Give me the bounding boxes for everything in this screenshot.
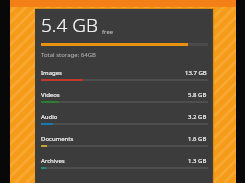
- staticText: Audio: [41, 113, 58, 121]
- staticText: 1.6 GB: [188, 135, 207, 143]
- button[interactable]: Videos 5.8 GB: [41, 91, 208, 103]
- button[interactable]: Archives 1.3 GB: [41, 157, 208, 169]
- staticText: free: [102, 28, 114, 36]
- staticText: 13.7 GB: [185, 69, 207, 77]
- staticText: Images: [41, 69, 62, 77]
- button[interactable]: Audio 3.2 GB: [41, 113, 208, 125]
- staticText: 5.4 GB: [41, 12, 99, 38]
- staticText: Total storage: 64GB: [41, 51, 96, 59]
- staticText: 1.3 GB: [188, 157, 207, 165]
- staticText: Videos: [41, 91, 60, 99]
- button[interactable]: 5.4 GB: [35, 8, 214, 183]
- staticText: 3.2 GB: [188, 113, 207, 121]
- staticText: Archives: [41, 157, 65, 165]
- staticText: 5.8 GB: [188, 91, 207, 99]
- button[interactable]: Images 13.7 GB: [41, 69, 208, 81]
- button[interactable]: Documents 1.6 GB: [41, 135, 208, 147]
- staticText: Documents: [41, 135, 74, 143]
